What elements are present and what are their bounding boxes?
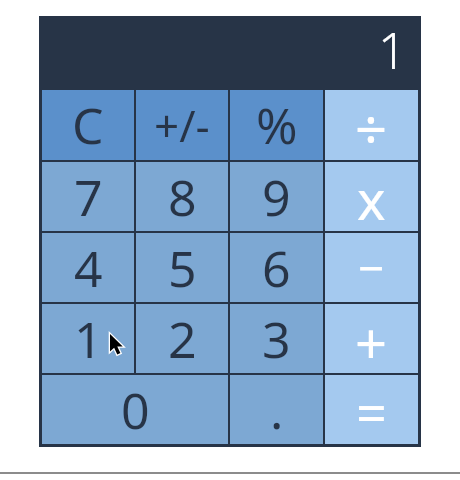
staticText: 2 bbox=[168, 305, 197, 373]
button[interactable]: 4 bbox=[42, 233, 134, 302]
button[interactable]: x bbox=[325, 162, 418, 231]
button[interactable]: = bbox=[325, 375, 418, 444]
staticText: 8 bbox=[168, 163, 197, 231]
button[interactable]: 2 bbox=[136, 304, 228, 373]
staticText: − bbox=[358, 236, 385, 299]
button[interactable]: . bbox=[230, 375, 323, 444]
staticText: ÷ bbox=[355, 90, 388, 160]
staticText: + bbox=[355, 304, 388, 373]
button[interactable]: % bbox=[230, 90, 323, 160]
staticText: % bbox=[256, 91, 298, 159]
button[interactable]: + bbox=[325, 304, 418, 373]
button[interactable]: 7 bbox=[42, 162, 134, 231]
button[interactable]: C bbox=[42, 90, 134, 160]
staticText: 4 bbox=[74, 234, 103, 302]
staticText: +/- bbox=[154, 95, 210, 155]
staticText: 1 bbox=[74, 305, 103, 373]
button[interactable]: 1 bbox=[42, 304, 134, 373]
button[interactable]: 9 bbox=[230, 162, 323, 231]
staticText: C bbox=[72, 91, 104, 159]
staticText: 3 bbox=[262, 305, 291, 373]
button[interactable]: − bbox=[325, 233, 418, 302]
staticText: 7 bbox=[74, 163, 103, 231]
staticText: 9 bbox=[262, 163, 291, 231]
staticText: . bbox=[270, 376, 284, 444]
button[interactable]: 0 bbox=[42, 375, 228, 444]
staticText: 0 bbox=[121, 376, 150, 444]
staticText: 5 bbox=[168, 234, 197, 302]
staticText: = bbox=[356, 375, 387, 444]
button[interactable]: +/- bbox=[136, 90, 228, 160]
staticText: 6 bbox=[262, 234, 291, 302]
staticText: 1 bbox=[378, 16, 407, 84]
button[interactable]: 3 bbox=[230, 304, 323, 373]
button[interactable]: 6 bbox=[230, 233, 323, 302]
button[interactable]: ÷ bbox=[325, 90, 418, 160]
staticText: x bbox=[357, 162, 386, 231]
button[interactable]: 5 bbox=[136, 233, 228, 302]
button[interactable]: 8 bbox=[136, 162, 228, 231]
